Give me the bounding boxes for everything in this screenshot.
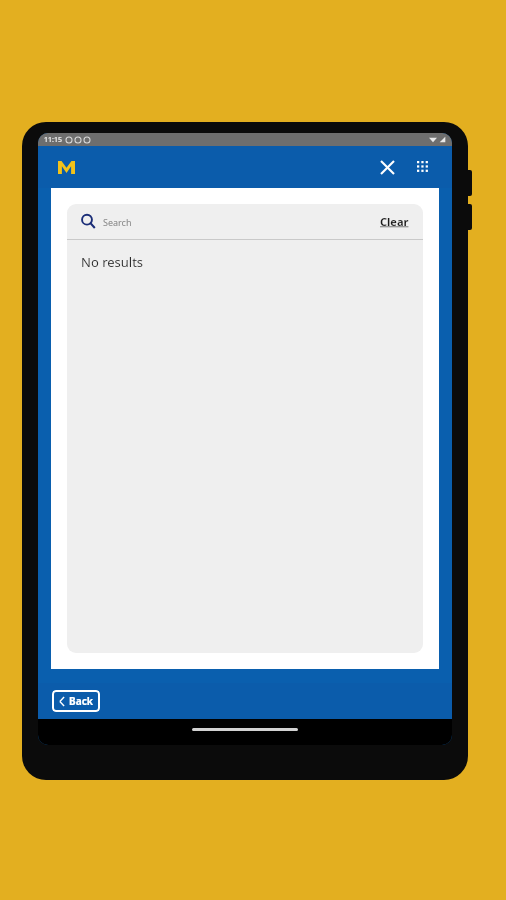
button[interactable]: Clear bbox=[380, 214, 409, 229]
button[interactable]: Apps bbox=[408, 152, 438, 182]
button[interactable]: Close bbox=[372, 152, 402, 182]
button[interactable]: Back bbox=[52, 690, 100, 712]
staticText: Clear bbox=[380, 214, 409, 229]
staticText: Back bbox=[69, 694, 93, 708]
staticText: No results bbox=[81, 253, 144, 271]
button[interactable]: Search bbox=[67, 204, 423, 239]
button[interactable]: Home bbox=[55, 156, 77, 178]
staticText: Search bbox=[103, 216, 132, 228]
staticText: 11:15 bbox=[44, 135, 62, 145]
